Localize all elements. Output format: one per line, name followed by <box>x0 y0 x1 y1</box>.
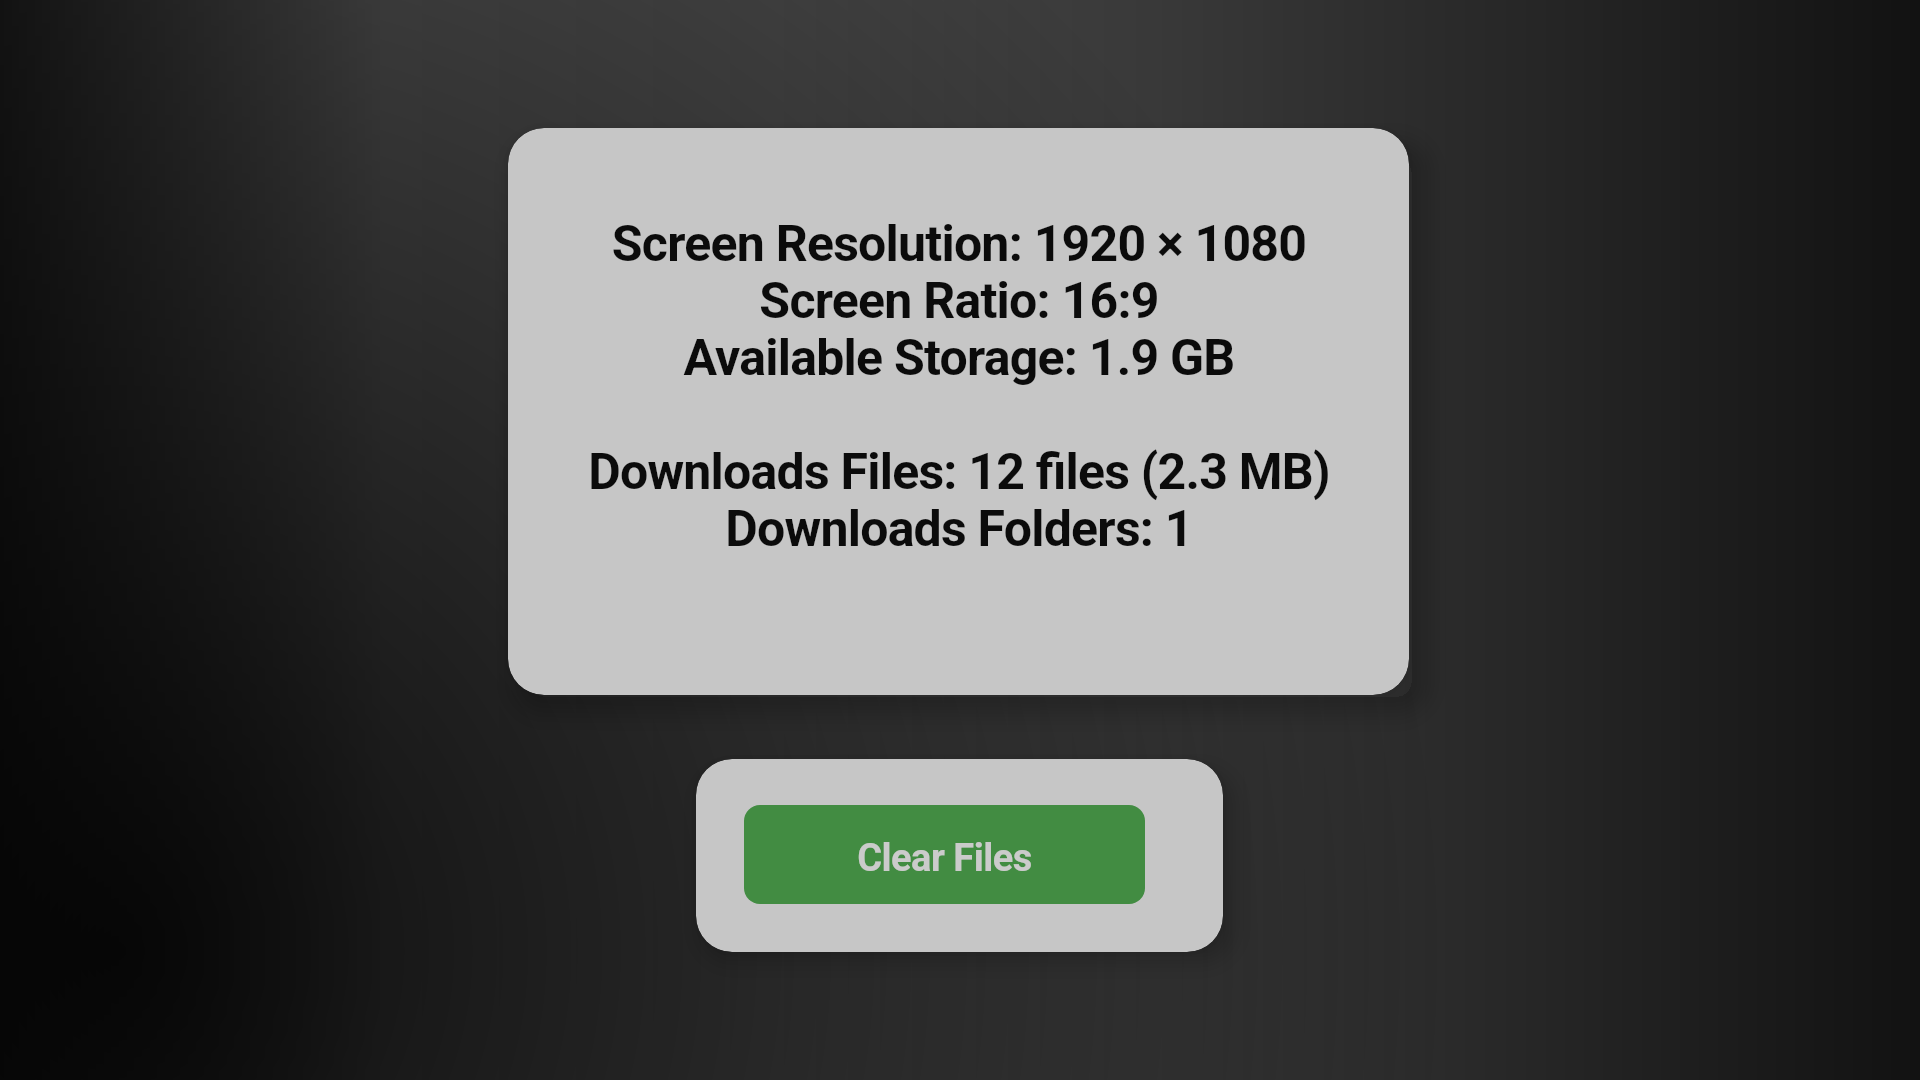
staticText: Screen Resolution: 1920 × 1080 Screen Ra… <box>588 215 1330 558</box>
staticText: Clear Files <box>857 836 1032 881</box>
button[interactable]: Clear Files <box>744 805 1145 904</box>
